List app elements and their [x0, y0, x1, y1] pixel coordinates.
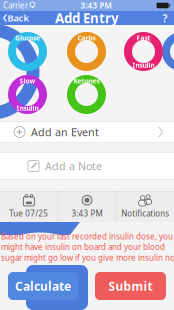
- staticText: Back: [7, 12, 28, 24]
- staticText: Add Entry: [55, 9, 119, 27]
- staticText: Add a Note: [45, 159, 102, 173]
- staticText: ?: [162, 11, 167, 25]
- staticText: Tue 07/25: [9, 208, 48, 219]
- staticText: Submit: [108, 278, 152, 294]
- staticText: Based on your last recorded insulin dose…: [1, 231, 174, 263]
- staticText: Glucose: [15, 33, 40, 42]
- staticText: 3:43 PM: [71, 208, 102, 219]
- staticText: Calculate: [15, 278, 71, 294]
- button[interactable]: Help: [158, 11, 172, 24]
- staticText: Fast: [136, 33, 150, 42]
- button[interactable]: Notifications: [116, 191, 174, 222]
- staticText: Insulin: [132, 61, 154, 69]
- staticText: Notifications: [121, 208, 169, 219]
- staticText: Carbs: [77, 33, 95, 42]
- button[interactable]: Add a Note: [0, 152, 174, 180]
- button[interactable]: Back: [2, 11, 32, 24]
- button[interactable]: Calculate: [8, 272, 78, 300]
- staticText: Insulin: [16, 104, 38, 112]
- staticText: Slow: [19, 76, 35, 85]
- button[interactable]: Tue 07/25: [0, 191, 58, 222]
- button[interactable]: Add an Event: [0, 121, 174, 143]
- button[interactable]: Submit: [95, 272, 166, 300]
- staticText: 3:43 PM: [80, 0, 111, 11]
- button[interactable]: 3:43 PM: [58, 191, 116, 222]
- staticText: Carrier: [3, 0, 28, 11]
- staticText: Ketones: [73, 76, 99, 85]
- staticText: Add an Event: [31, 125, 99, 139]
